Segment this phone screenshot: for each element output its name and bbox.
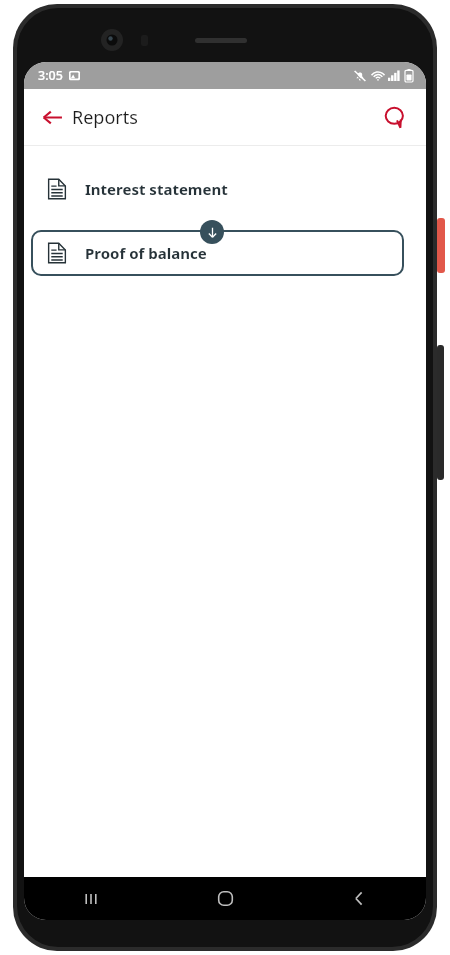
staticText: Interest statement bbox=[85, 179, 228, 199]
button[interactable]: Interest statement bbox=[24, 167, 426, 211]
staticText: Reports bbox=[72, 105, 138, 130]
button[interactable]: Home bbox=[158, 877, 292, 920]
button[interactable]: Back bbox=[292, 877, 426, 920]
button[interactable]: Chat support bbox=[374, 97, 414, 137]
staticText: 3:05 bbox=[38, 67, 63, 84]
staticText: Proof of balance bbox=[85, 243, 207, 263]
button[interactable]: Download bbox=[200, 220, 224, 244]
button[interactable]: Back bbox=[34, 99, 71, 136]
button[interactable]: Proof of balance bbox=[31, 230, 404, 276]
button[interactable]: Recent apps bbox=[24, 877, 158, 920]
